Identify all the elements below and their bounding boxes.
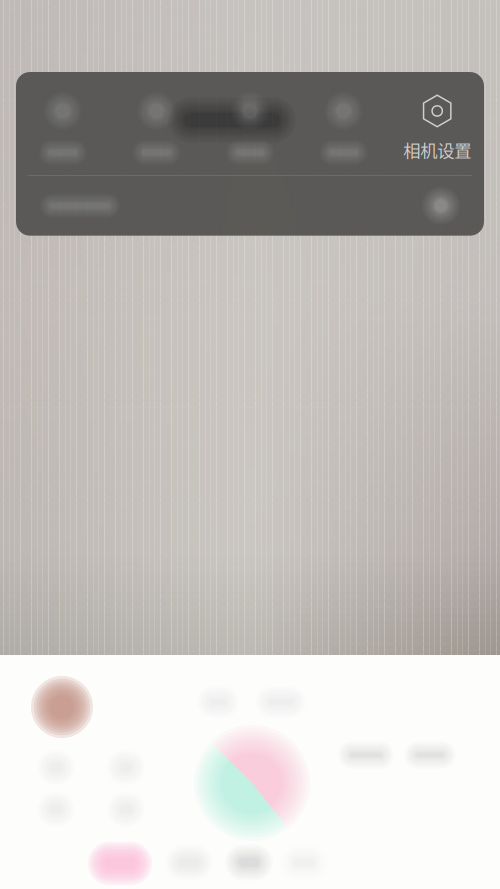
button[interactable]: Camera option (297, 92, 390, 165)
button[interactable]: Filter (280, 844, 328, 880)
button[interactable]: Filter (165, 844, 213, 880)
button[interactable]: Camera option (203, 92, 297, 165)
button[interactable]: Filter (225, 844, 273, 880)
button[interactable]: Account (31, 676, 93, 738)
button[interactable]: Camera option (16, 92, 110, 165)
button[interactable]: 相机设置 (390, 94, 484, 163)
button[interactable]: Camera option (110, 92, 203, 165)
button[interactable]: Filter (88, 842, 152, 885)
staticText: 相机设置 (403, 137, 471, 163)
